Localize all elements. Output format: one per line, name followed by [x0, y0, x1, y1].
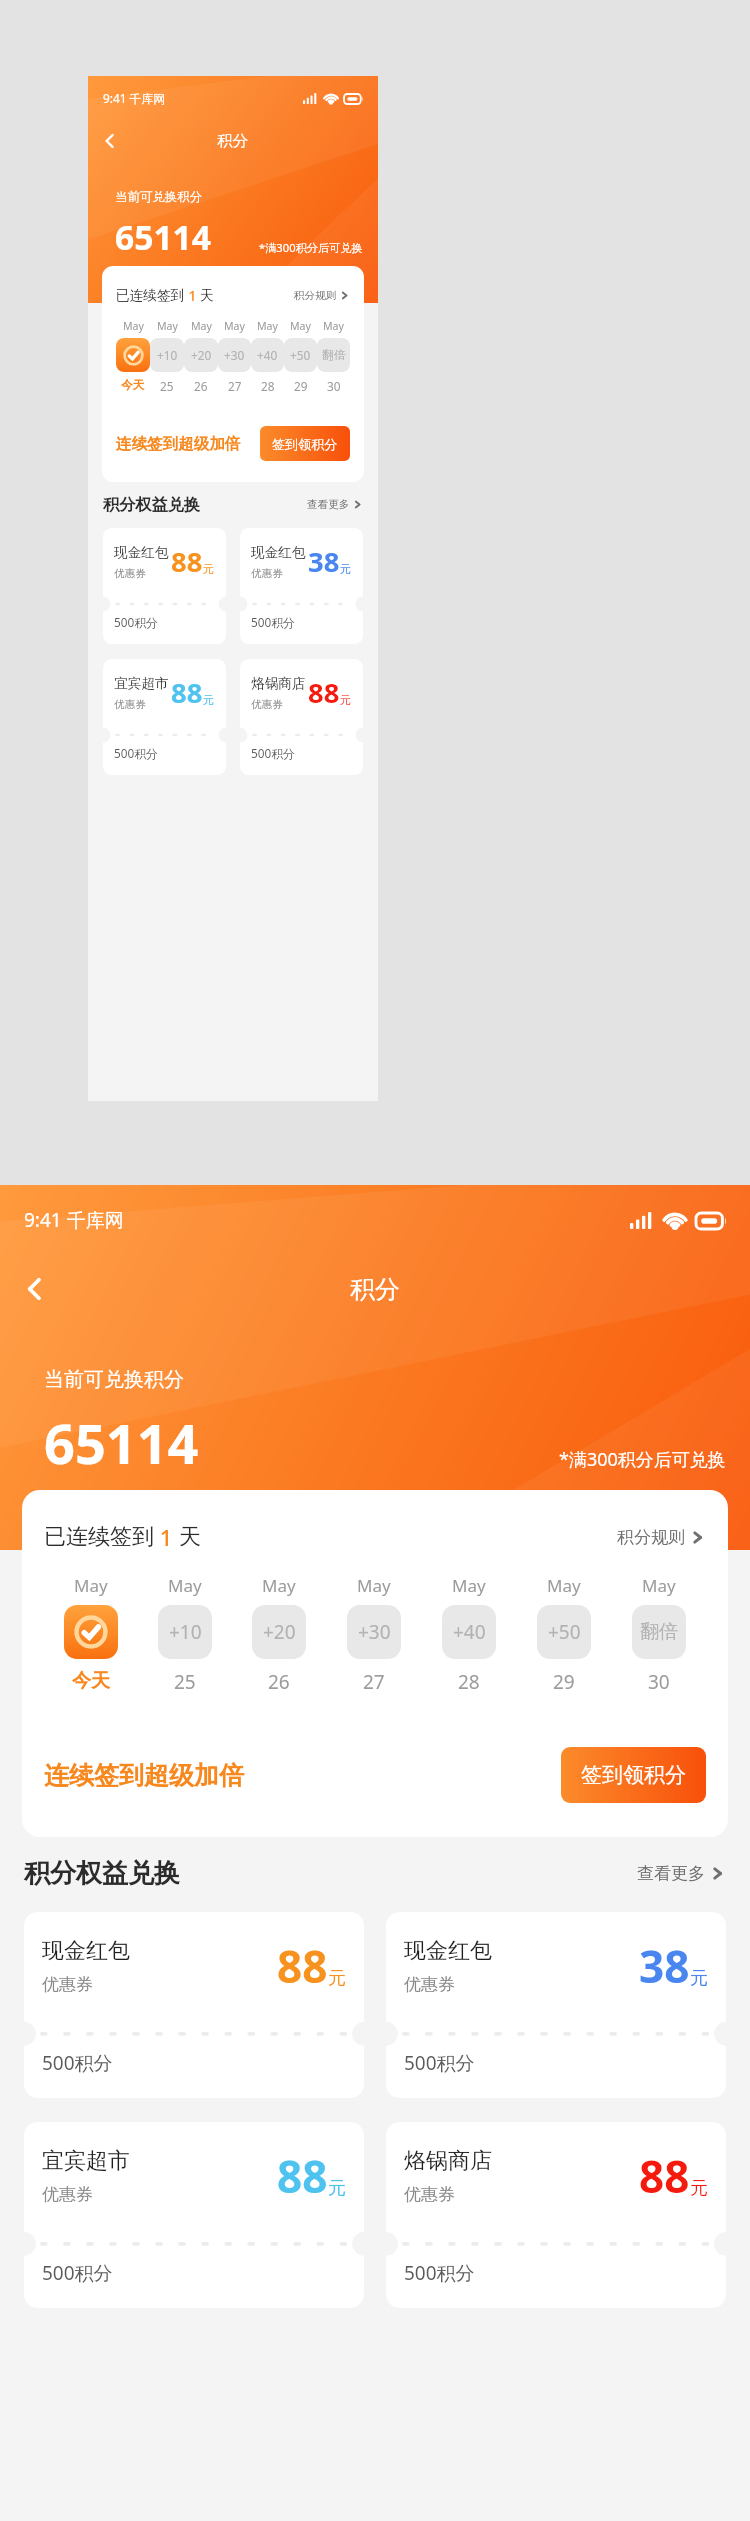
staticText: +40: [257, 347, 278, 363]
button[interactable]: 积分规则: [292, 287, 350, 304]
staticText: +50: [548, 1619, 581, 1645]
staticText: 88: [308, 674, 340, 711]
staticText: 优惠券: [404, 2184, 455, 2205]
button[interactable]: May: [516, 1574, 611, 1695]
staticText: 500积分: [114, 745, 158, 761]
button[interactable]: May: [116, 319, 150, 393]
staticText: May: [191, 319, 212, 333]
staticText: 宜宾超市: [114, 675, 169, 692]
staticText: +40: [453, 1619, 486, 1645]
staticText: 查看更多: [307, 498, 350, 511]
button[interactable]: May: [44, 1574, 138, 1693]
staticText: 38: [639, 1936, 690, 1996]
staticText: 积分: [217, 131, 249, 151]
staticText: May: [290, 319, 311, 333]
staticText: May: [74, 1574, 108, 1597]
staticText: May: [157, 319, 178, 333]
button[interactable]: 现金红包: [240, 528, 363, 644]
button[interactable]: 现金红包: [386, 1912, 726, 2098]
staticText: 29: [294, 378, 308, 394]
staticText: 1: [154, 1522, 179, 1552]
button[interactable]: May: [232, 1574, 326, 1695]
staticText: May: [257, 319, 278, 333]
staticText: 500积分: [404, 2050, 475, 2076]
staticText: 当前可兑换积分: [115, 189, 203, 205]
staticText: 500积分: [42, 2050, 113, 2076]
button[interactable]: May: [326, 1574, 421, 1695]
button[interactable]: 已连续签到: [102, 266, 364, 482]
staticText: 28: [261, 378, 275, 394]
staticText: May: [642, 1574, 676, 1597]
button[interactable]: Back: [12, 1266, 58, 1312]
button[interactable]: 已连续签到: [22, 1490, 728, 1837]
staticText: 元: [340, 693, 352, 707]
staticText: 88: [277, 1936, 328, 1996]
staticText: +30: [358, 1619, 391, 1645]
button[interactable]: 签到领积分: [561, 1747, 706, 1803]
staticText: +20: [263, 1619, 296, 1645]
staticText: 500积分: [251, 614, 295, 630]
button[interactable]: 查看更多: [634, 1860, 726, 1887]
staticText: 现金红包: [42, 1937, 130, 1965]
button[interactable]: 烙锅商店: [240, 659, 363, 775]
staticText: 65114: [115, 214, 212, 260]
staticText: 88: [277, 2146, 328, 2206]
staticText: 优惠券: [251, 567, 283, 580]
button[interactable]: May: [611, 1574, 706, 1695]
staticText: 优惠券: [114, 698, 146, 711]
staticText: 元: [328, 2177, 346, 2200]
button[interactable]: May: [317, 319, 350, 394]
button[interactable]: 查看更多: [305, 496, 363, 513]
staticText: 优惠券: [42, 2184, 93, 2205]
button[interactable]: May: [218, 319, 251, 394]
button[interactable]: May: [150, 319, 184, 394]
staticText: 500积分: [404, 2260, 475, 2286]
button[interactable]: May: [184, 319, 218, 394]
staticText: 26: [194, 378, 208, 394]
button[interactable]: May: [251, 319, 284, 394]
staticText: 26: [268, 1669, 290, 1695]
staticText: 已连续签到: [44, 1523, 154, 1551]
staticText: 已连续签到: [116, 287, 185, 304]
button[interactable]: 现金红包: [24, 1912, 364, 2098]
staticText: 烙锅商店: [404, 2147, 492, 2175]
staticText: +20: [191, 347, 212, 363]
staticText: 今天: [121, 378, 145, 393]
button[interactable]: 签到领积分: [260, 426, 350, 461]
button[interactable]: 宜宾超市: [103, 659, 226, 775]
staticText: *满300积分后可兑换: [559, 1447, 726, 1472]
staticText: 积分: [350, 1274, 400, 1305]
button[interactable]: 宜宾超市: [24, 2122, 364, 2308]
staticText: 连续签到超级加倍: [116, 434, 241, 454]
staticText: 今天: [72, 1669, 110, 1693]
staticText: May: [357, 1574, 391, 1597]
button[interactable]: Back: [95, 126, 124, 155]
staticText: 9:41 千库网: [103, 90, 165, 106]
staticText: May: [547, 1574, 581, 1597]
staticText: 9:41 千库网: [24, 1207, 124, 1233]
staticText: *满300积分后可兑换: [259, 240, 363, 255]
staticText: 当前可兑换积分: [44, 1367, 184, 1392]
staticText: 500积分: [42, 2260, 113, 2286]
staticText: 65114: [44, 1406, 199, 1480]
staticText: 27: [363, 1669, 385, 1695]
button[interactable]: 烙锅商店: [386, 2122, 726, 2308]
button[interactable]: May: [421, 1574, 516, 1695]
staticText: May: [123, 319, 144, 333]
staticText: 现金红包: [404, 1937, 492, 1965]
button[interactable]: 现金红包: [103, 528, 226, 644]
button[interactable]: 积分规则: [614, 1524, 706, 1551]
staticText: 宜宾超市: [42, 2147, 130, 2175]
staticText: 1: [185, 286, 200, 305]
staticText: 29: [553, 1669, 575, 1695]
staticText: 元: [328, 1967, 346, 1990]
staticText: 38: [308, 543, 340, 580]
button[interactable]: May: [284, 319, 317, 394]
staticText: +10: [169, 1619, 202, 1645]
staticText: 现金红包: [251, 544, 306, 561]
staticText: May: [168, 1574, 202, 1597]
staticText: 签到领积分: [581, 1762, 686, 1788]
button[interactable]: May: [138, 1574, 232, 1695]
staticText: 天: [179, 1523, 201, 1551]
staticText: 元: [203, 693, 215, 707]
